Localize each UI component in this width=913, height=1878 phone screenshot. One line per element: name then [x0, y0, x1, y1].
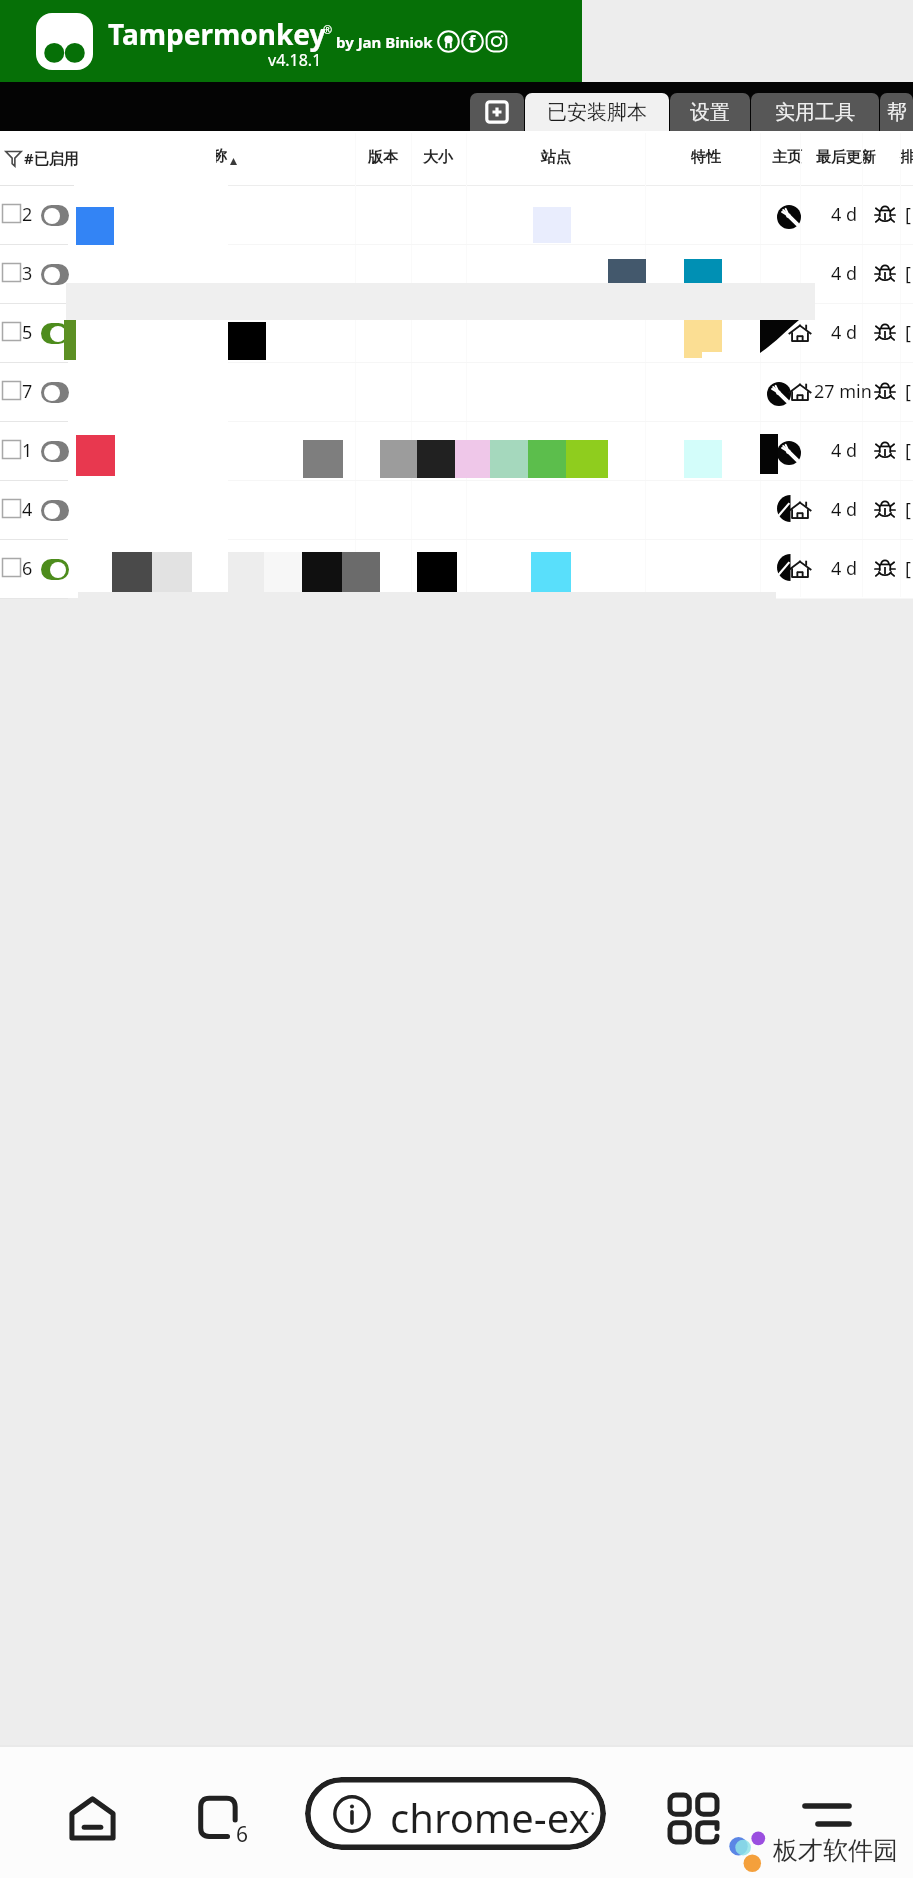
- staticText: 6: [22, 556, 33, 581]
- staticText: [: [905, 556, 911, 581]
- staticText: 特性: [691, 148, 721, 167]
- button[interactable]: 已安装脚本: [525, 93, 669, 131]
- button[interactable]: Apps: [670, 1795, 717, 1842]
- button[interactable]: Disabled: [41, 205, 69, 226]
- button[interactable]: Debug: [873, 262, 897, 286]
- button[interactable]: 实用工具: [751, 93, 879, 131]
- button[interactable]: Select script 1: [0, 422, 913, 481]
- button[interactable]: Enabled: [41, 323, 69, 344]
- button[interactable]: New user script: [470, 93, 524, 131]
- button[interactable]: Home: [68, 1794, 117, 1843]
- staticText: 7: [22, 379, 33, 404]
- staticText: 3: [22, 261, 33, 286]
- staticText: 站点: [541, 148, 571, 167]
- button[interactable]: Greasy Fork: [767, 382, 791, 406]
- button[interactable]: Select script 2: [2, 204, 21, 223]
- staticText: Tampermonkey: [108, 15, 326, 53]
- staticText: [: [905, 497, 911, 522]
- staticText: 1: [22, 438, 33, 463]
- button[interactable]: chrome-ex: [305, 1777, 606, 1850]
- button[interactable]: Disabled: [41, 500, 69, 521]
- button[interactable]: Homepage: [789, 323, 811, 345]
- button[interactable]: Open tabs: 6: [197, 1793, 250, 1846]
- button[interactable]: Enabled: [41, 559, 69, 580]
- staticText: chrome-ex: [390, 1790, 590, 1844]
- staticText: 4 d: [831, 438, 858, 463]
- button[interactable]: 帮: [880, 93, 913, 131]
- button[interactable]: Greasy Fork: [777, 205, 801, 229]
- staticText: 帮: [887, 100, 907, 125]
- staticText: #已启用: [24, 148, 79, 168]
- staticText: [: [905, 202, 911, 227]
- staticText: 排: [900, 148, 913, 167]
- staticText: 4: [22, 497, 33, 522]
- button[interactable]: Select script 2: [0, 186, 913, 245]
- button[interactable]: Select script 1: [2, 440, 21, 459]
- staticText: 4 d: [831, 261, 858, 286]
- staticText: 4 d: [831, 497, 858, 522]
- button[interactable]: Menu: [803, 1793, 853, 1843]
- button[interactable]: Select script 4: [2, 499, 21, 518]
- button[interactable]: Facebook: [461, 30, 484, 53]
- button[interactable]: Greasy Fork: [777, 441, 801, 465]
- staticText: [: [905, 438, 911, 463]
- button[interactable]: Debug: [873, 557, 897, 581]
- button[interactable]: Instagram: [485, 30, 508, 53]
- button[interactable]: Select script 3: [2, 263, 21, 282]
- staticText: 称: [216, 147, 224, 166]
- staticText: 版本: [368, 148, 398, 167]
- button[interactable]: Disabled: [41, 382, 69, 403]
- staticText: 主页: [772, 148, 802, 167]
- button[interactable]: Homepage: [789, 559, 811, 581]
- staticText: 4 d: [831, 202, 858, 227]
- staticText: 5: [22, 320, 33, 345]
- button[interactable]: Disabled: [41, 264, 69, 285]
- button[interactable]: Debug: [873, 380, 897, 404]
- button[interactable]: Debug: [873, 321, 897, 345]
- staticText: 4 d: [831, 556, 858, 581]
- staticText: [: [905, 379, 911, 404]
- staticText: [: [905, 261, 911, 286]
- staticText: ®: [323, 22, 333, 37]
- staticText: 27 min: [814, 379, 872, 404]
- button[interactable]: Select script 7: [0, 363, 913, 422]
- button[interactable]: Homepage: [789, 500, 811, 522]
- staticText: 大小: [423, 148, 453, 167]
- button[interactable]: Disabled: [41, 441, 69, 462]
- staticText: f: [469, 30, 476, 52]
- button[interactable]: Select script 7: [2, 381, 21, 400]
- staticText: 实用工具: [775, 100, 855, 125]
- button[interactable]: Select script 5: [2, 322, 21, 341]
- button[interactable]: Select script 3: [0, 245, 913, 304]
- button[interactable]: Select script 5: [0, 304, 913, 363]
- button[interactable]: 设置: [670, 93, 750, 131]
- button[interactable]: GitHub: [437, 30, 460, 53]
- button[interactable]: Select script 6: [2, 558, 21, 577]
- staticText: by Jan Biniok: [336, 32, 433, 52]
- button[interactable]: Homepage: [789, 382, 811, 404]
- staticText: 4 d: [831, 320, 858, 345]
- button[interactable]: Debug: [873, 439, 897, 463]
- button[interactable]: Select script 6: [0, 540, 913, 599]
- staticText: 已安装脚本: [547, 100, 647, 125]
- staticText: 2: [22, 202, 33, 227]
- staticText: ·: [590, 1800, 596, 1827]
- staticText: 设置: [690, 100, 730, 125]
- staticText: v4.18.1: [268, 49, 322, 71]
- staticText: 板才软件园: [773, 1835, 898, 1866]
- button[interactable]: Select script 4: [0, 481, 913, 540]
- button[interactable]: Debug: [873, 498, 897, 522]
- button[interactable]: Debug: [873, 203, 897, 227]
- staticText: 6: [236, 1820, 249, 1849]
- staticText: [: [905, 320, 911, 345]
- staticText: 最后更新: [816, 148, 876, 167]
